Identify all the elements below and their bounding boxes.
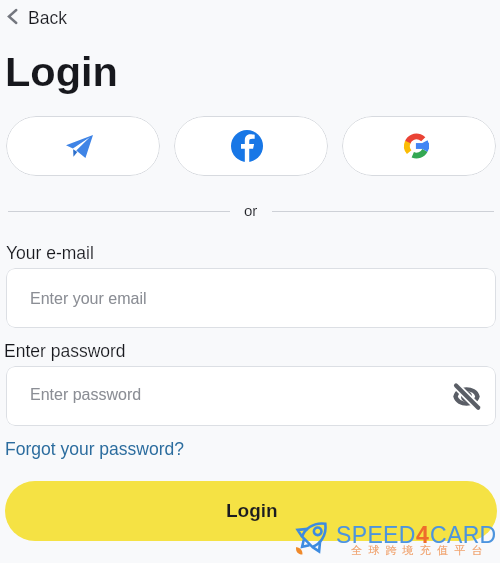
- staticText: CARD: [430, 522, 497, 548]
- staticText: SPEED: [336, 522, 416, 548]
- button[interactable]: Sign in with Google: [342, 116, 496, 176]
- staticText: Enter password: [4, 341, 126, 361]
- staticText: Back: [28, 8, 67, 28]
- staticText: Enter password: [30, 386, 142, 404]
- button[interactable]: Enter your email: [6, 268, 496, 328]
- button[interactable]: Sign in with Telegram: [6, 116, 160, 176]
- staticText: 4: [416, 522, 430, 548]
- staticText: Login: [226, 500, 278, 521]
- button[interactable]: Login: [5, 481, 497, 541]
- staticText: 全球跨境充值平台: [351, 543, 489, 557]
- button[interactable]: Enter password: [6, 366, 496, 426]
- staticText: or: [244, 202, 258, 219]
- button[interactable]: Show password: [450, 380, 482, 412]
- staticText: Login: [5, 48, 118, 94]
- staticText: Your e-mail: [6, 243, 94, 263]
- staticText: Enter your email: [30, 290, 147, 308]
- button[interactable]: Forgot your password?: [1, 435, 188, 463]
- button[interactable]: Sign in with Facebook: [174, 116, 328, 176]
- button[interactable]: Back: [2, 0, 77, 30]
